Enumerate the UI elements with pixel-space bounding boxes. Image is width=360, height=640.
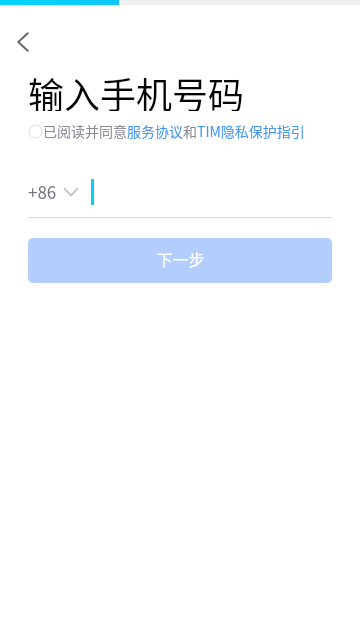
staticText: +86 (28, 179, 57, 204)
staticText: 下一步 (156, 247, 205, 270)
button[interactable]: Back (1, 20, 45, 64)
staticText: 已阅读并同意服务协议和TIM隐私保护指引 (43, 121, 305, 141)
staticText: 输入手机号码 (28, 67, 245, 111)
button[interactable]: Phone number (91, 178, 332, 205)
button[interactable]: +86 (28, 179, 78, 204)
button[interactable]: 下一步 (28, 238, 332, 283)
button[interactable]: 已阅读并同意服务协议和TIM隐私保护指引 (28, 121, 305, 141)
